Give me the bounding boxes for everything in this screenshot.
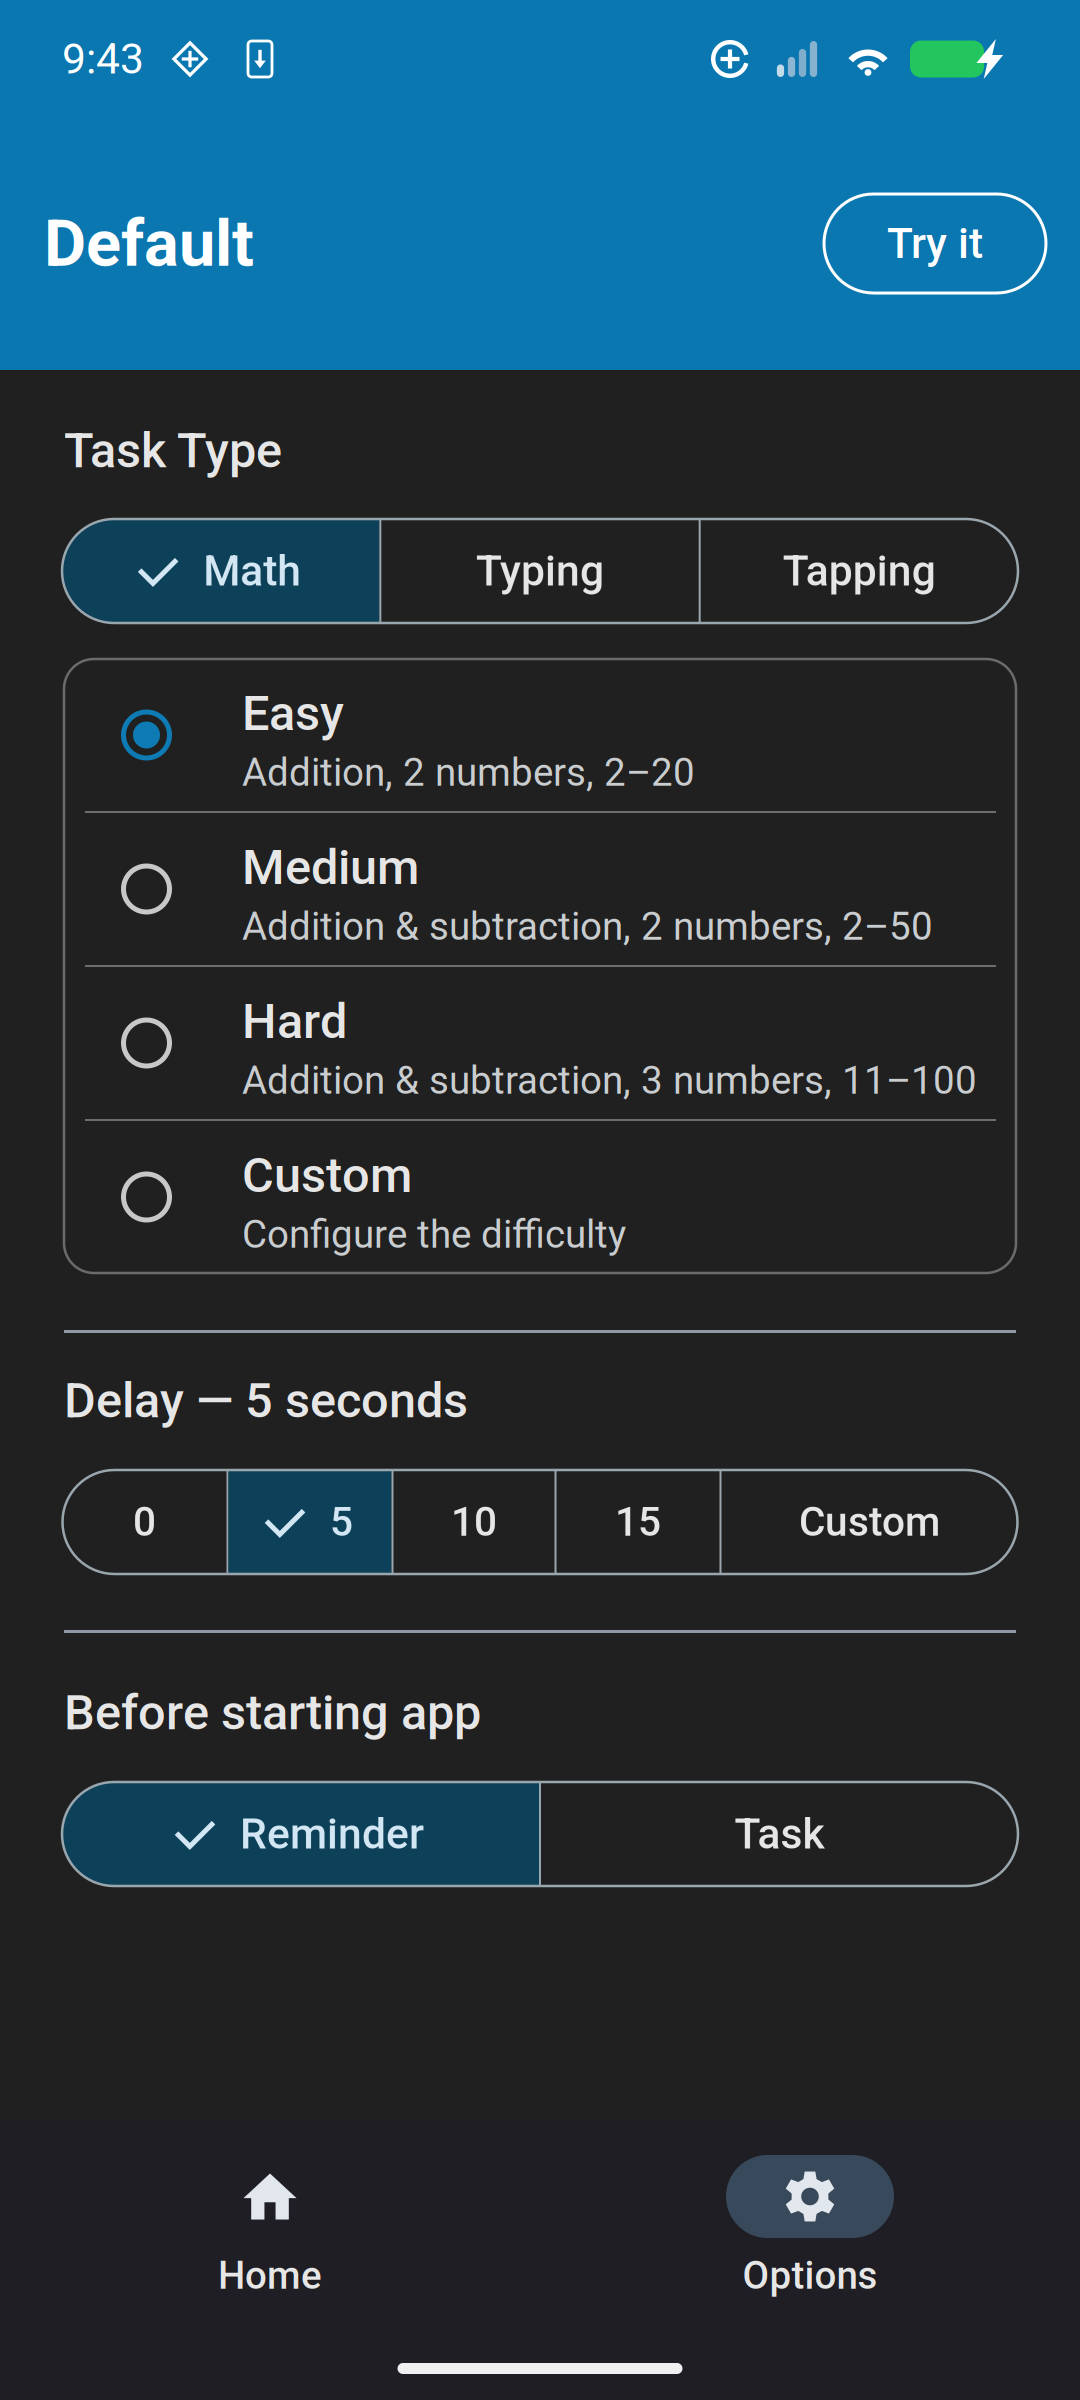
button[interactable]: Hard (64, 967, 1016, 1119)
staticText: Try it (887, 219, 983, 268)
button[interactable]: Math (62, 519, 379, 623)
staticText: Addition & subtraction, 3 numbers, 11–10… (242, 1058, 977, 1103)
staticText: Configure the difficulty (242, 1212, 626, 1257)
staticText: Typing (476, 546, 604, 596)
button[interactable]: Task (541, 1782, 1018, 1886)
staticText: Hard (242, 993, 347, 1050)
staticText: Delay — 5 seconds (64, 1372, 468, 1429)
staticText: 10 (451, 1498, 497, 1546)
staticText: Task (734, 1809, 824, 1859)
button[interactable]: Typing (381, 519, 699, 623)
staticText: Math (203, 546, 301, 596)
staticText: 5 (330, 1498, 353, 1546)
staticText: Before starting app (64, 1684, 481, 1741)
staticText: Reminder (240, 1809, 424, 1859)
staticText: Custom (799, 1498, 940, 1546)
button[interactable]: Custom (721, 1470, 1017, 1574)
button[interactable]: Custom (64, 1121, 1016, 1273)
button[interactable]: Easy (64, 659, 1016, 811)
button[interactable]: Tapping (701, 519, 1018, 623)
staticText: Medium (242, 839, 419, 896)
button[interactable]: 0 (62, 1470, 226, 1574)
button[interactable]: Try it (824, 194, 1046, 293)
button[interactable]: 5 (228, 1470, 391, 1574)
staticText: Options (742, 2253, 877, 2298)
staticText: Home (218, 2253, 322, 2298)
staticText: 0 (133, 1498, 156, 1546)
staticText: 15 (615, 1498, 661, 1546)
staticText: Easy (242, 685, 344, 742)
button[interactable]: 10 (393, 1470, 554, 1574)
staticText: Task Type (64, 422, 282, 479)
staticText: 9:43 (62, 34, 144, 84)
button[interactable]: Reminder (62, 1782, 539, 1886)
staticText: Tapping (783, 546, 936, 596)
staticText: Addition, 2 numbers, 2–20 (242, 750, 695, 795)
staticText: Addition & subtraction, 2 numbers, 2–50 (242, 904, 933, 949)
button[interactable]: Options (540, 2155, 1080, 2298)
staticText: Default (44, 205, 254, 281)
button[interactable]: Medium (64, 813, 1016, 965)
button[interactable]: Home (0, 2155, 540, 2298)
button[interactable]: 15 (556, 1470, 719, 1574)
staticText: Custom (242, 1147, 412, 1204)
